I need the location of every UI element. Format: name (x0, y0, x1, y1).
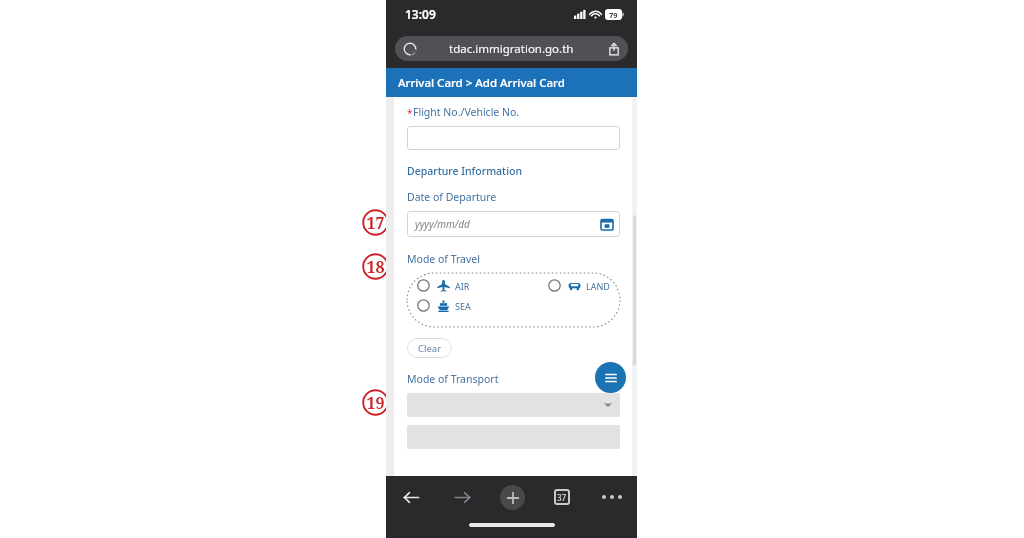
button[interactable]: AIR (417, 279, 470, 292)
button[interactable]: Open dropdown (407, 393, 620, 417)
staticText: yyyy/mm/dd (415, 217, 470, 231)
button[interactable]: Departure Information (407, 164, 522, 178)
staticText: tdac.immigration.go.th (449, 41, 574, 57)
staticText: Arrival Card > Add Arrival Card (398, 75, 565, 91)
staticText: 19 (366, 392, 385, 414)
staticText: * (407, 106, 413, 120)
other: Open dropdown (604, 401, 612, 409)
button[interactable]: Menu (595, 362, 626, 393)
staticText: Flight No./Vehicle No. (413, 105, 520, 119)
staticText: 17 (366, 212, 385, 234)
staticText: 13:09 (405, 6, 436, 22)
button[interactable]: Page settings (395, 36, 628, 61)
button[interactable]: Tabs (554, 489, 570, 505)
button[interactable]: SEA (417, 299, 471, 312)
other: Share (607, 42, 621, 56)
button[interactable]: New tab (500, 485, 525, 510)
button[interactable]: LAND (548, 279, 610, 292)
staticText: 37 (557, 492, 567, 503)
staticText: Clear (418, 342, 442, 355)
other: Page settings (402, 41, 418, 57)
staticText: LAND (586, 280, 610, 292)
staticText: 79 (609, 10, 618, 20)
staticText: Mode of Transport (407, 372, 499, 386)
button[interactable]: More options (600, 488, 624, 506)
button[interactable]: Forward (437, 489, 487, 506)
button[interactable]: yyyy/mm/dd (407, 211, 620, 237)
staticText: Date of Departure (407, 190, 497, 204)
button[interactable]: Clear (407, 338, 452, 358)
other: Pick date (601, 218, 613, 230)
button[interactable]: Arrival Card > Add Arrival Card (386, 68, 637, 97)
staticText: Mode of Travel (407, 252, 480, 266)
staticText: AIR (455, 280, 470, 292)
staticText: SEA (455, 300, 471, 312)
staticText: 18 (366, 256, 385, 278)
button[interactable]: Back (386, 489, 437, 506)
button[interactable] (407, 126, 620, 150)
